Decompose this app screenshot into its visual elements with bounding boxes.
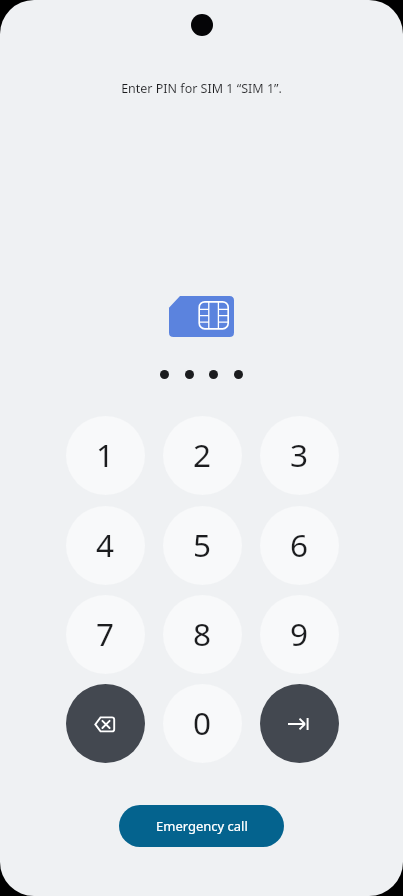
staticText: Emergency call (156, 817, 248, 835)
staticText: 7 (96, 612, 115, 655)
button[interactable]: 9 (260, 595, 339, 674)
staticText: 3 (290, 433, 309, 476)
button[interactable]: Emergency call (119, 805, 284, 847)
button[interactable]: 7 (66, 595, 145, 674)
button[interactable]: 4 (66, 506, 145, 585)
button[interactable]: 0 (163, 684, 242, 763)
staticText: 0 (193, 701, 212, 744)
staticText: 2 (193, 433, 212, 476)
staticText: 4 (96, 523, 115, 566)
button[interactable]: Enter PIN (260, 684, 339, 763)
staticText: Enter PIN for SIM 1 “SIM 1”. (121, 80, 282, 97)
staticText: 5 (193, 523, 212, 566)
staticText: 1 (96, 433, 115, 476)
staticText: 6 (290, 523, 309, 566)
button[interactable]: Backspace (66, 684, 145, 763)
button[interactable]: 2 (163, 416, 242, 495)
button[interactable]: 8 (163, 595, 242, 674)
staticText: 8 (193, 612, 212, 655)
button[interactable]: 5 (163, 506, 242, 585)
button[interactable]: 6 (260, 506, 339, 585)
staticText: 9 (290, 612, 309, 655)
button[interactable]: 1 (66, 416, 145, 495)
button[interactable]: 3 (260, 416, 339, 495)
